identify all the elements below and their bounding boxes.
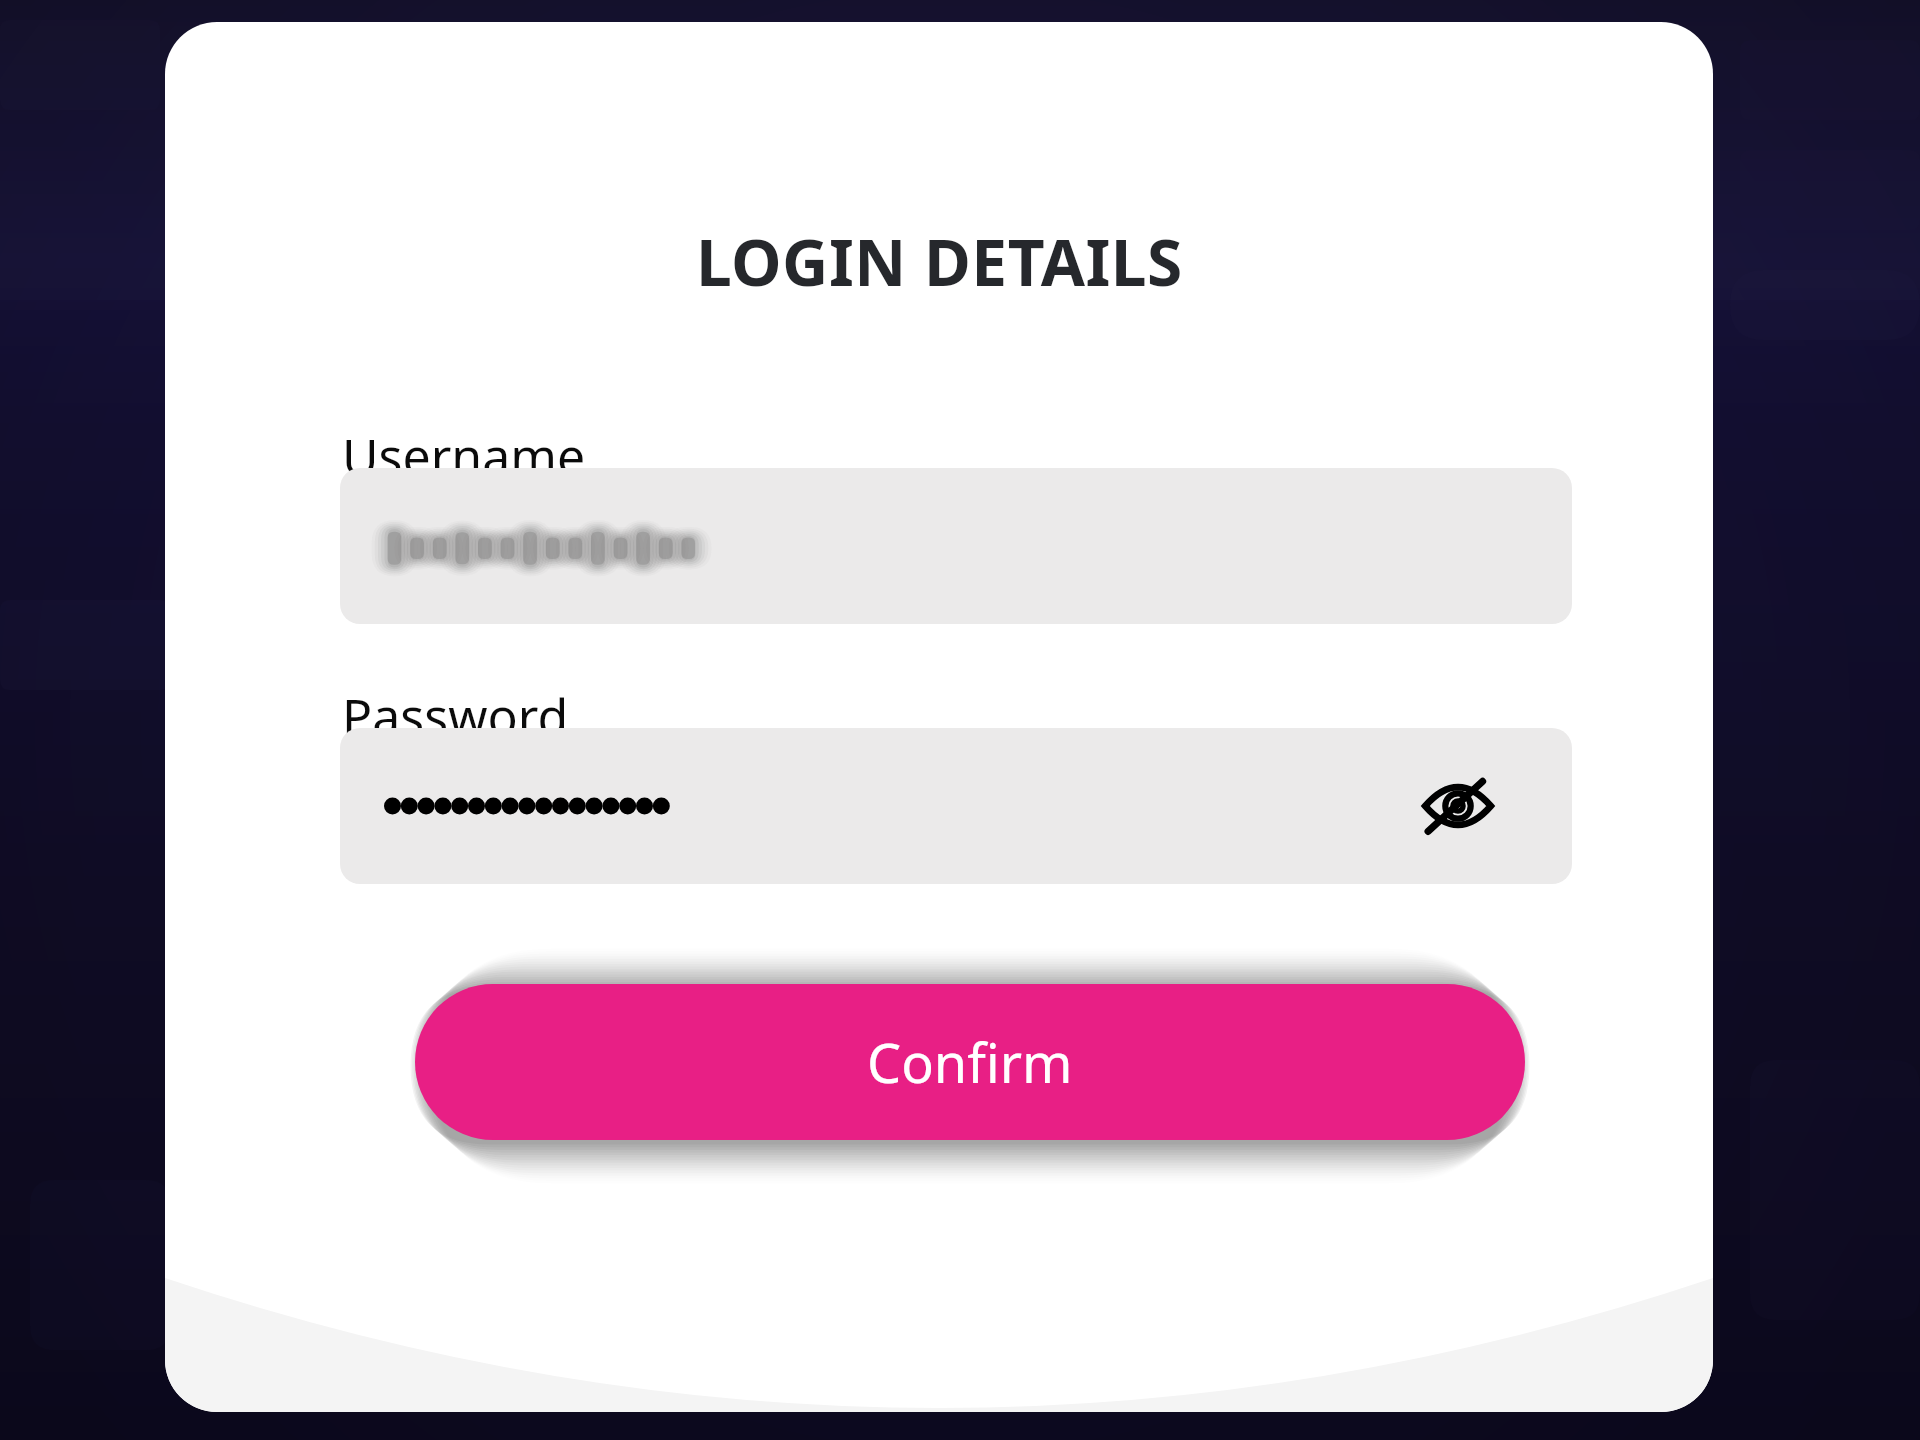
staticText: Confirm (867, 1025, 1073, 1099)
button[interactable]: Hide password (340, 728, 1572, 884)
staticText: LOGIN DETAILS (696, 218, 1183, 305)
staticText: Username (342, 422, 586, 490)
button[interactable] (340, 468, 1572, 624)
button[interactable]: Confirm (415, 984, 1525, 1140)
staticText: Password (342, 682, 569, 750)
button[interactable]: Hide password (1406, 754, 1510, 858)
